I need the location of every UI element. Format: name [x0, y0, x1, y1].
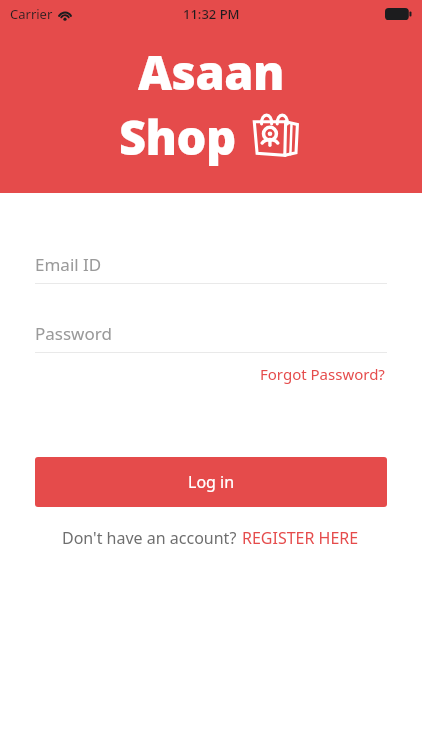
other: Asaan Shop logo	[247, 106, 303, 162]
staticText: Log in	[188, 471, 235, 493]
button[interactable]: Email ID	[35, 253, 387, 284]
staticText: Don't have an account?	[62, 527, 241, 549]
staticText: Shop	[119, 105, 236, 169]
button[interactable]: Forgot Password?	[258, 361, 387, 387]
staticText: 11:32 PM	[183, 5, 240, 23]
button[interactable]: Log in	[35, 457, 387, 507]
staticText: Asaan	[138, 40, 284, 104]
button[interactable]: Password	[35, 322, 387, 353]
staticText: Carrier	[10, 5, 53, 23]
other: Wi-Fi signal	[58, 7, 72, 21]
staticText: Password	[35, 322, 112, 345]
other: Battery full	[385, 8, 412, 20]
staticText: Email ID	[35, 253, 102, 276]
staticText: Forgot Password?	[260, 364, 385, 384]
staticText: REGISTER HERE	[242, 527, 359, 549]
button[interactable]: REGISTER HERE	[241, 524, 360, 552]
